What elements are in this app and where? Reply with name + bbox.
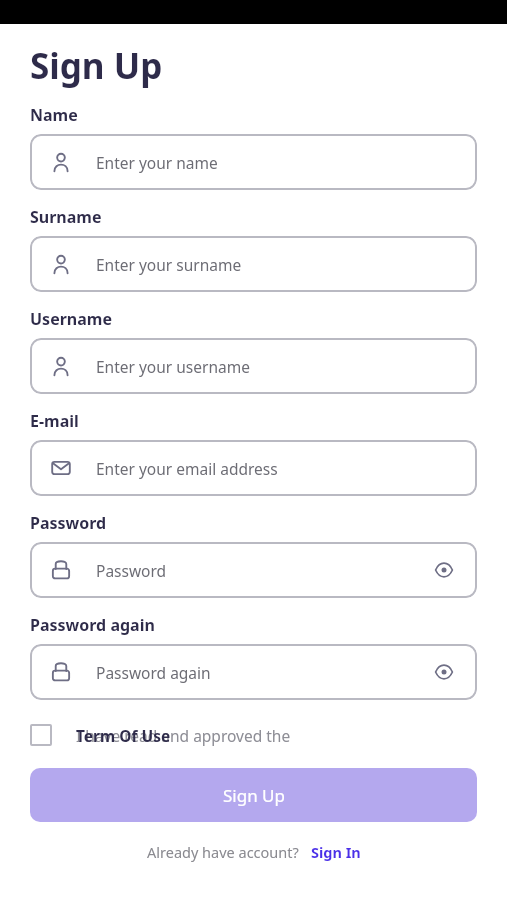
button[interactable]: Password (30, 542, 477, 598)
staticText: Sign Up (30, 42, 163, 90)
staticText: Password again (96, 662, 211, 683)
staticText: Username (30, 308, 112, 330)
staticText: Term Of Use (76, 725, 171, 746)
button[interactable]: Enter your name (30, 134, 477, 190)
staticText: Enter your surname (96, 254, 242, 275)
staticText: Password again (30, 614, 155, 636)
staticText: Name (30, 104, 78, 126)
staticText: I have read and approved the (76, 725, 291, 746)
staticText: Sign Up (223, 784, 285, 807)
button[interactable]: Show password (431, 557, 457, 583)
staticText: Enter your email address (96, 458, 278, 479)
staticText: Surname (30, 206, 102, 228)
staticText: Enter your username (96, 356, 250, 377)
button[interactable]: I have read and approved the (30, 724, 477, 746)
button[interactable]: Password again (30, 644, 477, 700)
staticText: Sign In (311, 842, 361, 862)
staticText: E-mail (30, 410, 79, 432)
button[interactable]: Sign Up (30, 768, 477, 822)
staticText: Password (96, 560, 167, 581)
button[interactable]: Show password (431, 659, 457, 685)
button[interactable]: Enter your username (30, 338, 477, 394)
staticText: Already have account? (147, 842, 299, 862)
button[interactable]: Enter your surname (30, 236, 477, 292)
staticText: Enter your name (96, 152, 218, 173)
button[interactable]: Enter your email address (30, 440, 477, 496)
staticText: Password (30, 512, 107, 534)
button[interactable]: Sign In (311, 842, 361, 862)
